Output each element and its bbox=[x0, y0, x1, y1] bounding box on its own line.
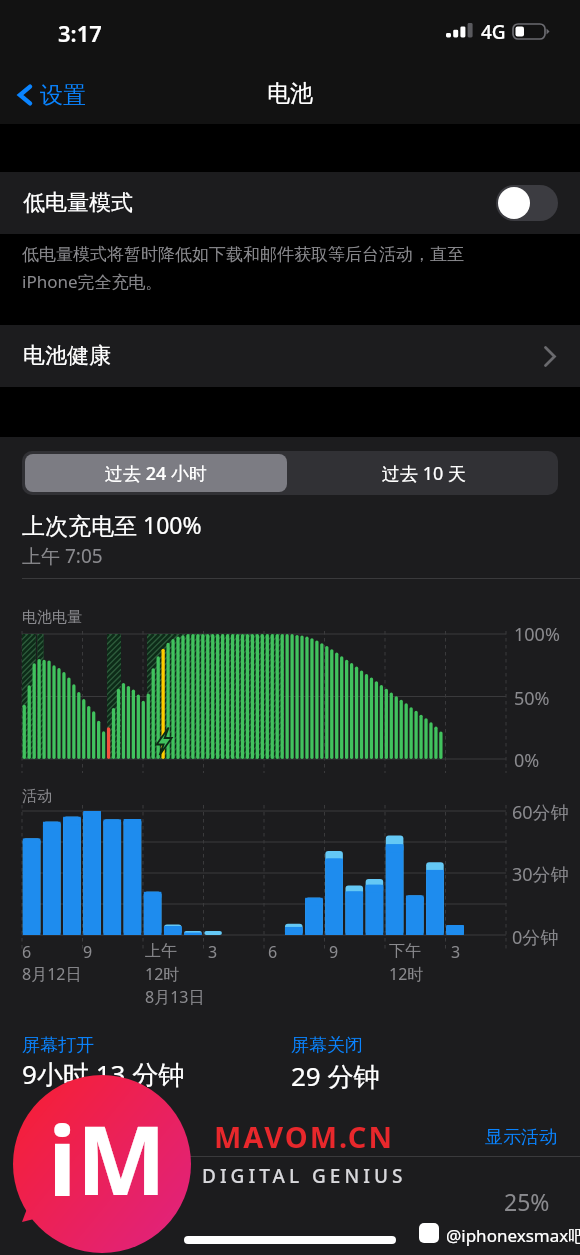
staticText: 微信 bbox=[22, 1172, 64, 1198]
staticText: 过去 24 小时 bbox=[105, 461, 207, 486]
staticText: 12时 bbox=[145, 963, 180, 985]
staticText: 上次充电至 100% bbox=[22, 509, 202, 540]
staticText: 屏幕关闭 bbox=[291, 1034, 363, 1057]
staticText: 30分钟 bbox=[512, 862, 569, 887]
staticText: 8月13日 bbox=[145, 986, 205, 1008]
staticText: 6 bbox=[22, 941, 32, 963]
button[interactable]: 过去 24 小时 bbox=[25, 454, 287, 492]
staticText: 下午 bbox=[389, 941, 421, 961]
staticText: 0分钟 bbox=[512, 925, 559, 950]
staticText: 低电量模式 bbox=[23, 189, 133, 217]
staticText: 25% bbox=[504, 1186, 550, 1217]
staticText: 3 bbox=[451, 941, 461, 963]
staticText: iM bbox=[48, 1093, 166, 1222]
staticText: 100% bbox=[514, 622, 560, 647]
staticText: 9 bbox=[83, 941, 93, 963]
staticText: @iphonexsmax吧 bbox=[446, 1224, 580, 1247]
button[interactable]: 低电量模式 bbox=[0, 172, 580, 234]
staticText: 12时 bbox=[389, 963, 424, 985]
staticText: 60分钟 bbox=[512, 800, 569, 825]
button[interactable]: 显示活动 bbox=[485, 1126, 557, 1149]
staticText: 设置 bbox=[40, 81, 86, 110]
button[interactable]: Low Power Mode toggle bbox=[496, 185, 558, 221]
staticText: 50% bbox=[514, 686, 550, 711]
staticText: 活动 bbox=[22, 787, 52, 806]
staticText: 电池 bbox=[267, 79, 313, 108]
staticText: 4G bbox=[481, 19, 506, 45]
button[interactable]: 电池健康 bbox=[0, 325, 580, 387]
staticText: 逐小时用量 bbox=[22, 1122, 122, 1147]
staticText: 6 bbox=[268, 941, 278, 963]
staticText: 电池电量 bbox=[22, 608, 82, 627]
staticText: 9 bbox=[329, 941, 339, 963]
staticText: 3:17 bbox=[58, 18, 102, 48]
staticText: 3 bbox=[208, 941, 218, 963]
button[interactable]: 过去 10 天 bbox=[290, 451, 558, 495]
staticText: 8月12日 bbox=[22, 963, 82, 985]
staticText: 9小时 13 分钟 bbox=[22, 1056, 185, 1092]
staticText: 显示活动 bbox=[485, 1126, 557, 1149]
button[interactable]: 设置 bbox=[10, 74, 92, 116]
staticText: 上午 7:05 bbox=[22, 543, 103, 569]
staticText: 低电量模式将暂时降低如下载和邮件获取等后台活动，直至 iPhone完全充电。 bbox=[22, 244, 464, 293]
staticText: 屏幕打开 bbox=[22, 1034, 94, 1057]
staticText: 电池健康 bbox=[23, 342, 111, 370]
staticText: 29 分钟 bbox=[291, 1058, 380, 1094]
staticText: MAVOM.CN bbox=[214, 1117, 394, 1156]
staticText: 过去 10 天 bbox=[382, 461, 466, 486]
staticText: 0% bbox=[514, 748, 540, 773]
staticText: 上午 bbox=[145, 941, 177, 961]
staticText: DIGITAL GENIUS bbox=[202, 1163, 407, 1189]
